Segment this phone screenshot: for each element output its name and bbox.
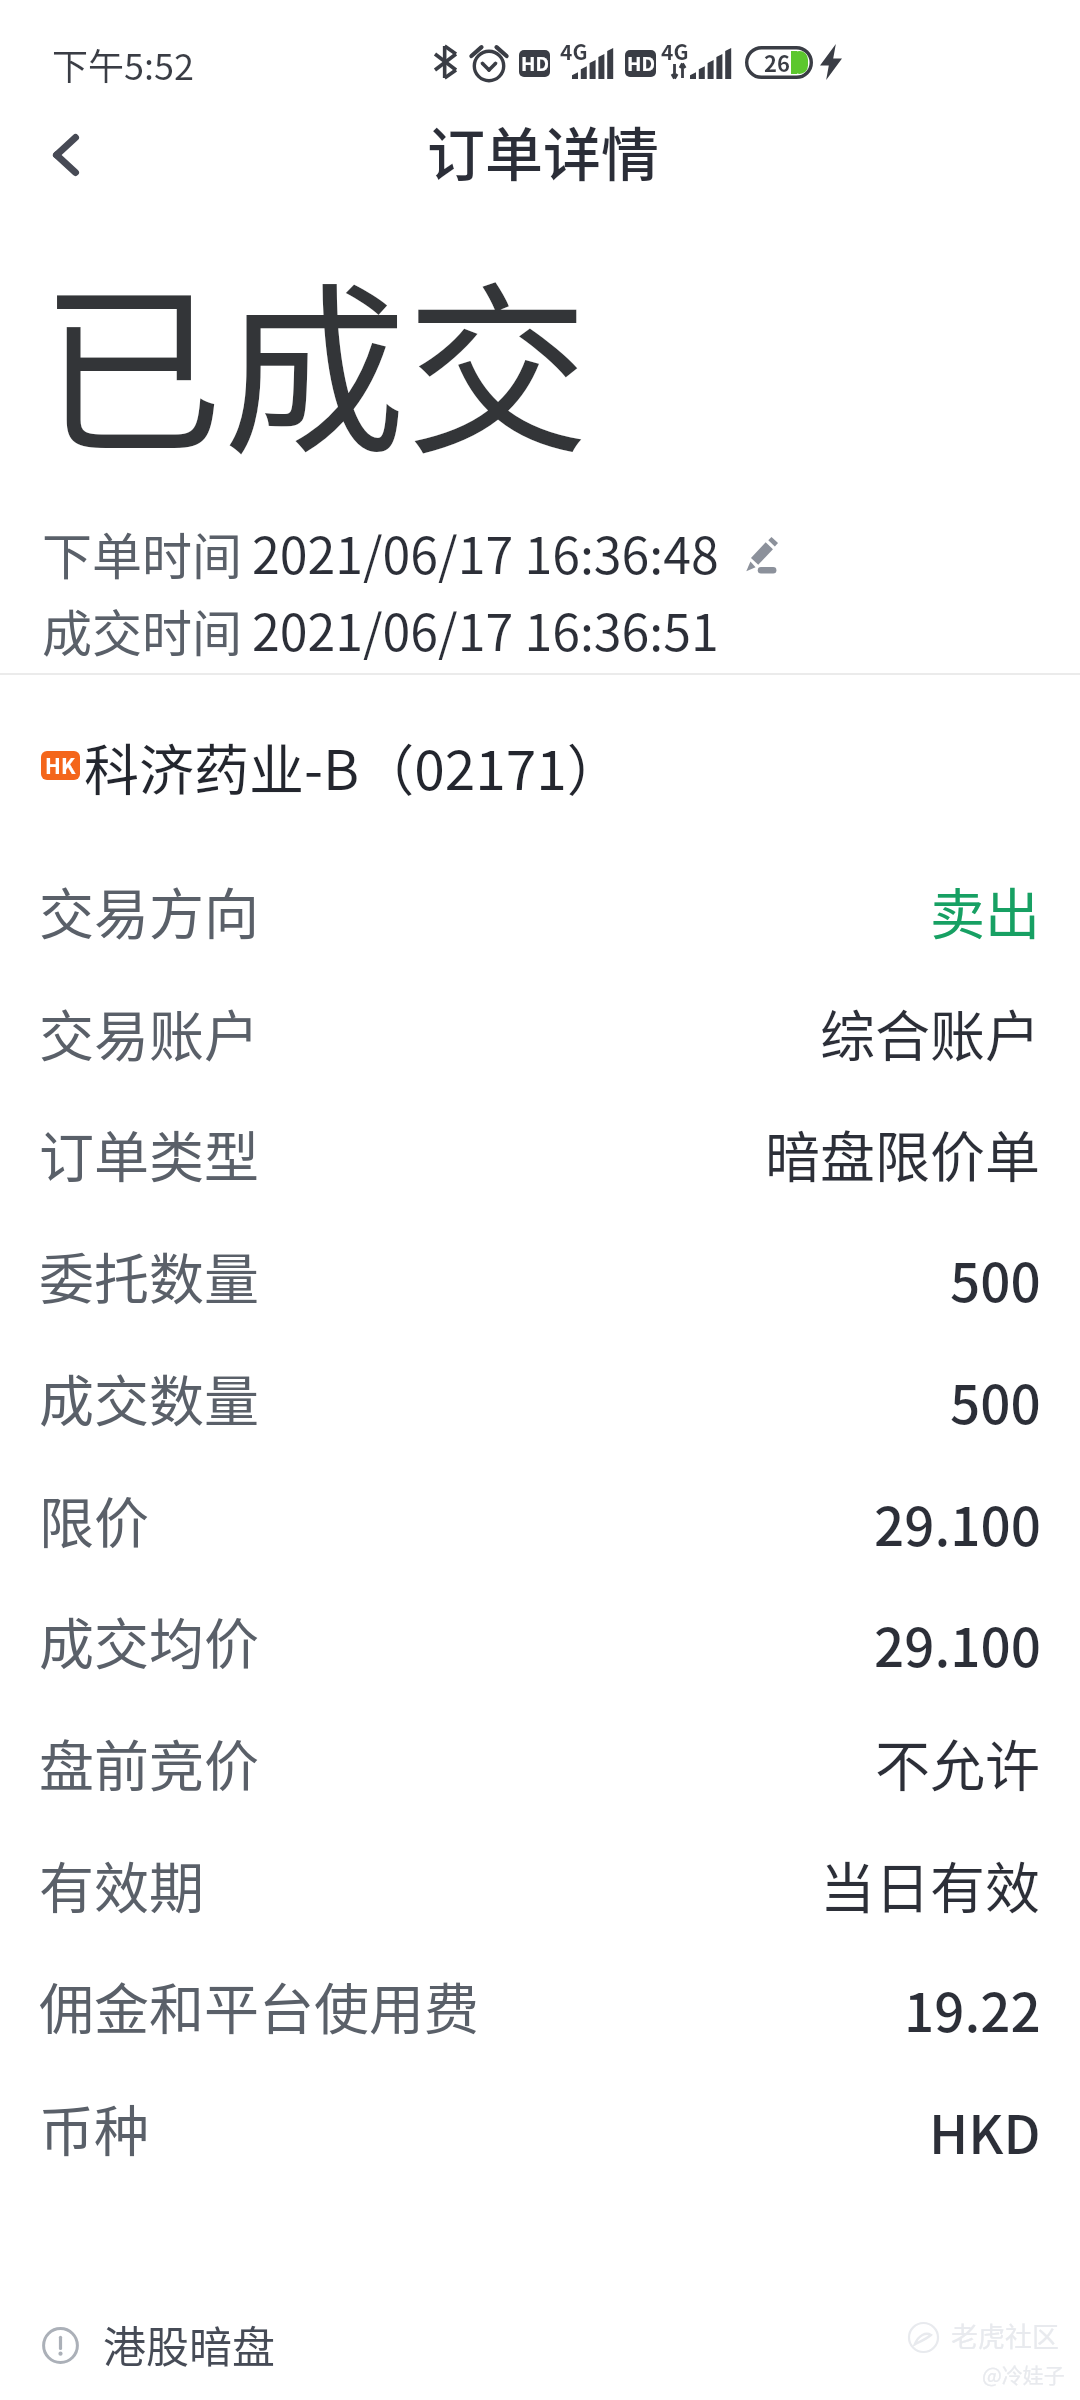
staticText: 2021/06/17 16:36:51	[252, 593, 719, 665]
staticText: 19.22	[904, 1971, 1041, 2048]
button[interactable]: 有效期	[0, 1823, 1080, 1945]
staticText: 下单时间	[42, 517, 242, 589]
staticText: 限价	[39, 1479, 150, 1559]
button[interactable]: 盘前竞价	[0, 1701, 1080, 1823]
staticText: 4G	[661, 36, 689, 66]
staticText: 暗盘限价单	[765, 1113, 1041, 1193]
staticText: 老虎社区	[951, 2316, 1059, 2355]
staticText: HKD	[929, 2093, 1041, 2170]
button[interactable]: 币种	[0, 2066, 1080, 2188]
staticText: 不允许	[875, 1722, 1041, 1802]
staticText: 有效期	[39, 1844, 205, 1924]
button[interactable]: 委托数量	[0, 1214, 1080, 1336]
staticText: 成交时间	[42, 594, 242, 666]
staticText: @冷娃子	[982, 2359, 1065, 2389]
staticText: 币种	[39, 2087, 150, 2167]
staticText: 订单类型	[39, 1113, 260, 1193]
button[interactable]: 限价	[0, 1458, 1080, 1580]
staticText: 2021/06/17 16:36:48	[252, 516, 719, 588]
staticText: HD	[521, 50, 549, 76]
staticText: 成交数量	[39, 1357, 260, 1437]
button[interactable]: 交易账户	[0, 971, 1080, 1093]
button[interactable]: 订单类型	[0, 1092, 1080, 1214]
staticText: 港股暗盘	[103, 2313, 275, 2375]
button[interactable]: HK	[0, 0, 1080, 80]
staticText: 委托数量	[39, 1235, 260, 1315]
staticText: 500	[950, 1241, 1041, 1318]
staticText: 当日有效	[820, 1844, 1041, 1924]
button[interactable]: 交易方向	[0, 849, 1080, 971]
staticText: 29.100	[874, 1485, 1041, 1562]
staticText: 已成交	[40, 226, 590, 491]
button[interactable]: 成交数量	[0, 1336, 1080, 1458]
staticText: HD	[627, 50, 655, 76]
button[interactable]: 港股暗盘	[42, 2322, 275, 2384]
button[interactable]: Back	[11, 102, 121, 207]
staticText: 29.100	[874, 1606, 1041, 1683]
staticText: 下午5:52	[52, 38, 194, 90]
button[interactable]: 成交均价	[0, 1579, 1080, 1701]
staticText: 综合账户	[820, 992, 1041, 1072]
staticText: 4G	[560, 36, 588, 66]
staticText: 26	[764, 46, 790, 78]
staticText: 交易方向	[39, 870, 260, 950]
staticText: 科济药业-B（02171）	[84, 726, 622, 806]
staticText: 500	[950, 1363, 1041, 1440]
staticText: 佣金和平台使用费	[39, 1965, 480, 2045]
button[interactable]: Edit	[733, 528, 789, 584]
staticText: 订单详情	[427, 109, 660, 193]
staticText: 成交均价	[39, 1600, 260, 1680]
staticText: 盘前竞价	[39, 1722, 260, 1802]
staticText: 交易账户	[39, 992, 260, 1072]
staticText: HK	[45, 751, 76, 779]
staticText: 卖出	[930, 870, 1041, 950]
button[interactable]: 佣金和平台使用费	[0, 1944, 1080, 2066]
